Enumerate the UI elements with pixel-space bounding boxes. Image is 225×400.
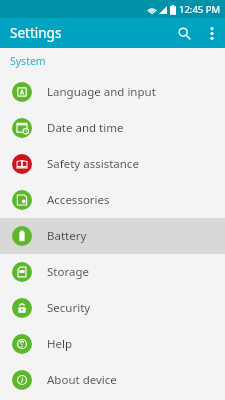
button[interactable]: Security [0, 290, 225, 326]
staticText: Help [47, 336, 73, 352]
button[interactable]: Help [0, 326, 225, 362]
button[interactable]: Search [169, 18, 199, 48]
staticText: Accessories [47, 192, 110, 208]
staticText: About device [47, 372, 117, 388]
staticText: Storage [47, 264, 89, 280]
staticText: Settings [10, 24, 62, 42]
button[interactable]: Storage [0, 254, 225, 290]
staticText: Language and input [47, 84, 156, 100]
staticText: Date and time [47, 120, 124, 136]
staticText: System [10, 54, 46, 68]
staticText: 12:45 PM [179, 3, 221, 16]
button[interactable]: Safety assistance [0, 146, 225, 182]
button[interactable]: Battery [0, 218, 225, 254]
button[interactable]: More options [199, 20, 225, 46]
button[interactable]: About device [0, 362, 225, 398]
button[interactable]: Accessories [0, 182, 225, 218]
button[interactable]: Language and input [0, 74, 225, 110]
staticText: Battery [47, 228, 87, 244]
staticText: Security [47, 300, 91, 316]
button[interactable]: Date and time [0, 110, 225, 146]
staticText: Safety assistance [47, 156, 139, 172]
